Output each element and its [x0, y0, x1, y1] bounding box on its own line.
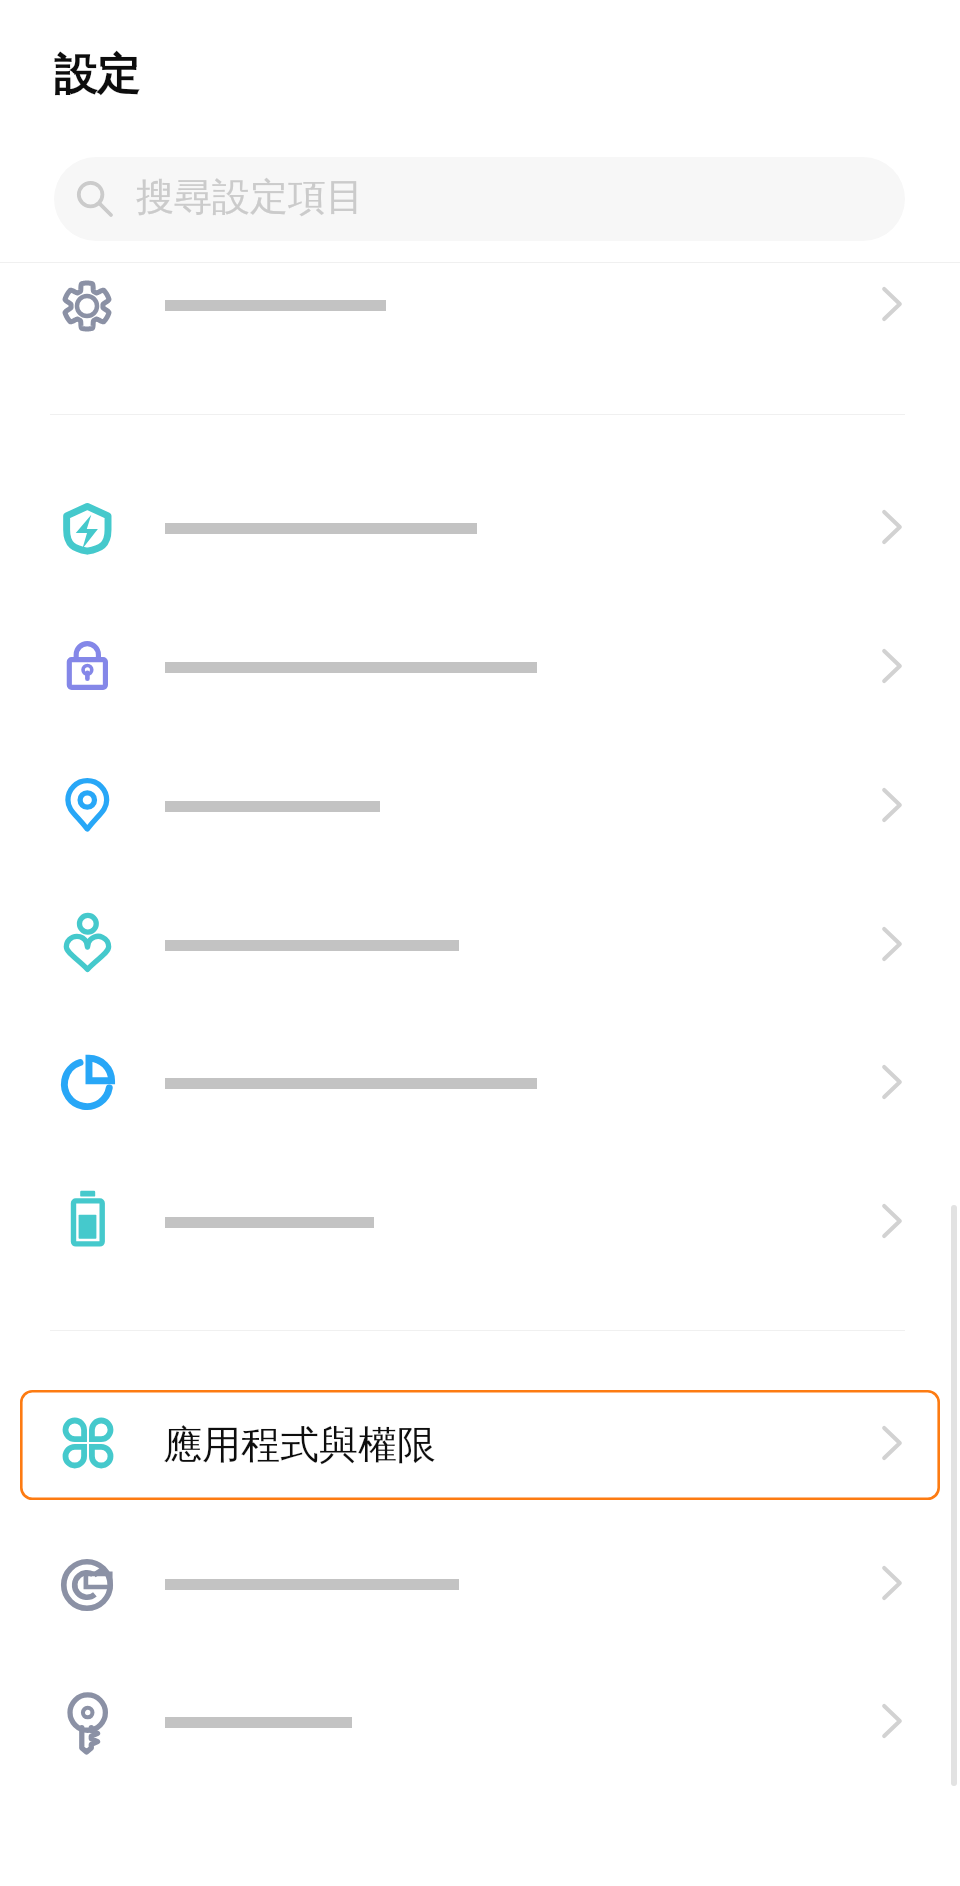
button[interactable]: Location — [0, 737, 960, 876]
button[interactable]: 設定 — [0, 0, 260, 140]
button[interactable]: General settings — [0, 236, 960, 375]
staticText: 搜尋設定項目 — [136, 173, 364, 221]
button[interactable]: Battery — [0, 1153, 960, 1292]
staticText: 應用程式與權限 — [163, 1420, 436, 1469]
button[interactable]: 搜尋設定項目 — [54, 157, 905, 241]
button[interactable]: Passwords — [0, 1653, 960, 1792]
button[interactable]: 應用程式與權限 — [20, 1390, 940, 1500]
button[interactable]: Google services — [0, 1515, 960, 1654]
button[interactable]: Data usage — [0, 1014, 960, 1153]
button[interactable]: Digital wellbeing — [0, 876, 960, 1015]
button[interactable]: Security — [0, 459, 960, 598]
staticText: 設定 — [54, 48, 140, 102]
button[interactable]: Privacy — [0, 598, 960, 737]
